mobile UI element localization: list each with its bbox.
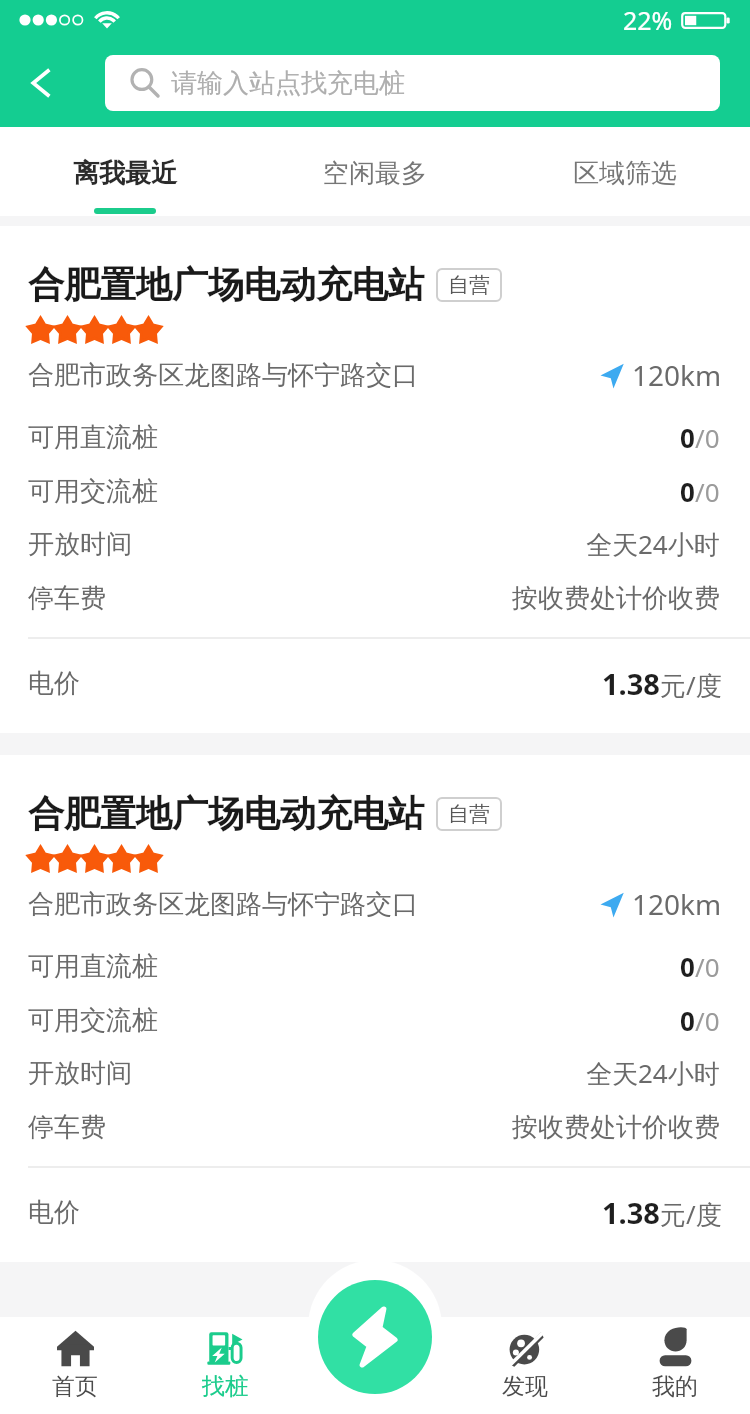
staticText: 我的 — [652, 1372, 698, 1401]
button[interactable]: 我的 — [600, 1317, 750, 1414]
staticText: 请输入站点找充电桩 — [171, 67, 405, 100]
staticText: 找桩 — [202, 1372, 248, 1401]
staticText: 全天24小时 — [586, 1055, 720, 1091]
button[interactable]: 发现 — [450, 1317, 600, 1414]
staticText: 0 — [680, 949, 695, 984]
staticText: /0 — [695, 949, 720, 984]
staticText: 0 — [680, 1003, 695, 1038]
staticText: 可用直流桩 — [28, 421, 158, 454]
button[interactable]: 合肥置地广场电动充电站 — [0, 226, 750, 733]
staticText: 可用直流桩 — [28, 950, 158, 983]
staticText: 发现 — [502, 1372, 548, 1401]
staticText: 电价 — [28, 667, 80, 700]
staticText: 区域筛选 — [573, 157, 677, 190]
staticText: 合肥市政务区龙图路与怀宁路交口 — [28, 359, 418, 392]
staticText: 0 — [680, 474, 695, 509]
staticText: 120km — [632, 885, 722, 923]
staticText: 全天24小时 — [586, 526, 720, 562]
staticText: 元/度 — [660, 667, 722, 703]
button[interactable]: 空闲最多 — [250, 127, 500, 216]
staticText: 首页 — [52, 1372, 98, 1401]
staticText: 可用交流桩 — [28, 1004, 158, 1037]
staticText: 自营 — [448, 801, 490, 827]
button[interactable]: 请输入站点找充电桩 — [105, 55, 720, 111]
staticText: 开放时间 — [28, 528, 132, 561]
staticText: 22% — [623, 3, 673, 37]
staticText: 元/度 — [660, 1196, 722, 1232]
staticText: 1.38 — [602, 664, 660, 703]
staticText: 合肥置地广场电动充电站 — [28, 262, 424, 307]
button[interactable]: 合肥置地广场电动充电站 — [0, 755, 750, 1262]
staticText: 自营 — [448, 272, 490, 298]
staticText: 1.38 — [602, 1193, 660, 1232]
button[interactable]: 首页 — [0, 1317, 150, 1414]
staticText: /0 — [695, 474, 720, 509]
staticText: 可用交流桩 — [28, 475, 158, 508]
staticText: 开放时间 — [28, 1057, 132, 1090]
staticText: 120km — [632, 356, 722, 394]
staticText: 停车费 — [28, 582, 106, 615]
staticText: 按收费处计价收费 — [512, 582, 720, 615]
button[interactable]: 找桩 — [150, 1317, 300, 1414]
staticText: 空闲最多 — [323, 157, 427, 190]
staticText: 按收费处计价收费 — [512, 1111, 720, 1144]
button[interactable]: Charge — [318, 1280, 432, 1394]
staticText: /0 — [695, 420, 720, 455]
staticText: 电价 — [28, 1196, 80, 1229]
button[interactable]: 区域筛选 — [500, 127, 750, 216]
button[interactable]: 离我最近 — [0, 127, 250, 216]
staticText: /0 — [695, 1003, 720, 1038]
staticText: 合肥置地广场电动充电站 — [28, 791, 424, 836]
staticText: 0 — [680, 420, 695, 455]
staticText: 停车费 — [28, 1111, 106, 1144]
staticText: 离我最近 — [73, 157, 177, 190]
button[interactable]: Back — [9, 55, 69, 111]
staticText: 合肥市政务区龙图路与怀宁路交口 — [28, 888, 418, 921]
